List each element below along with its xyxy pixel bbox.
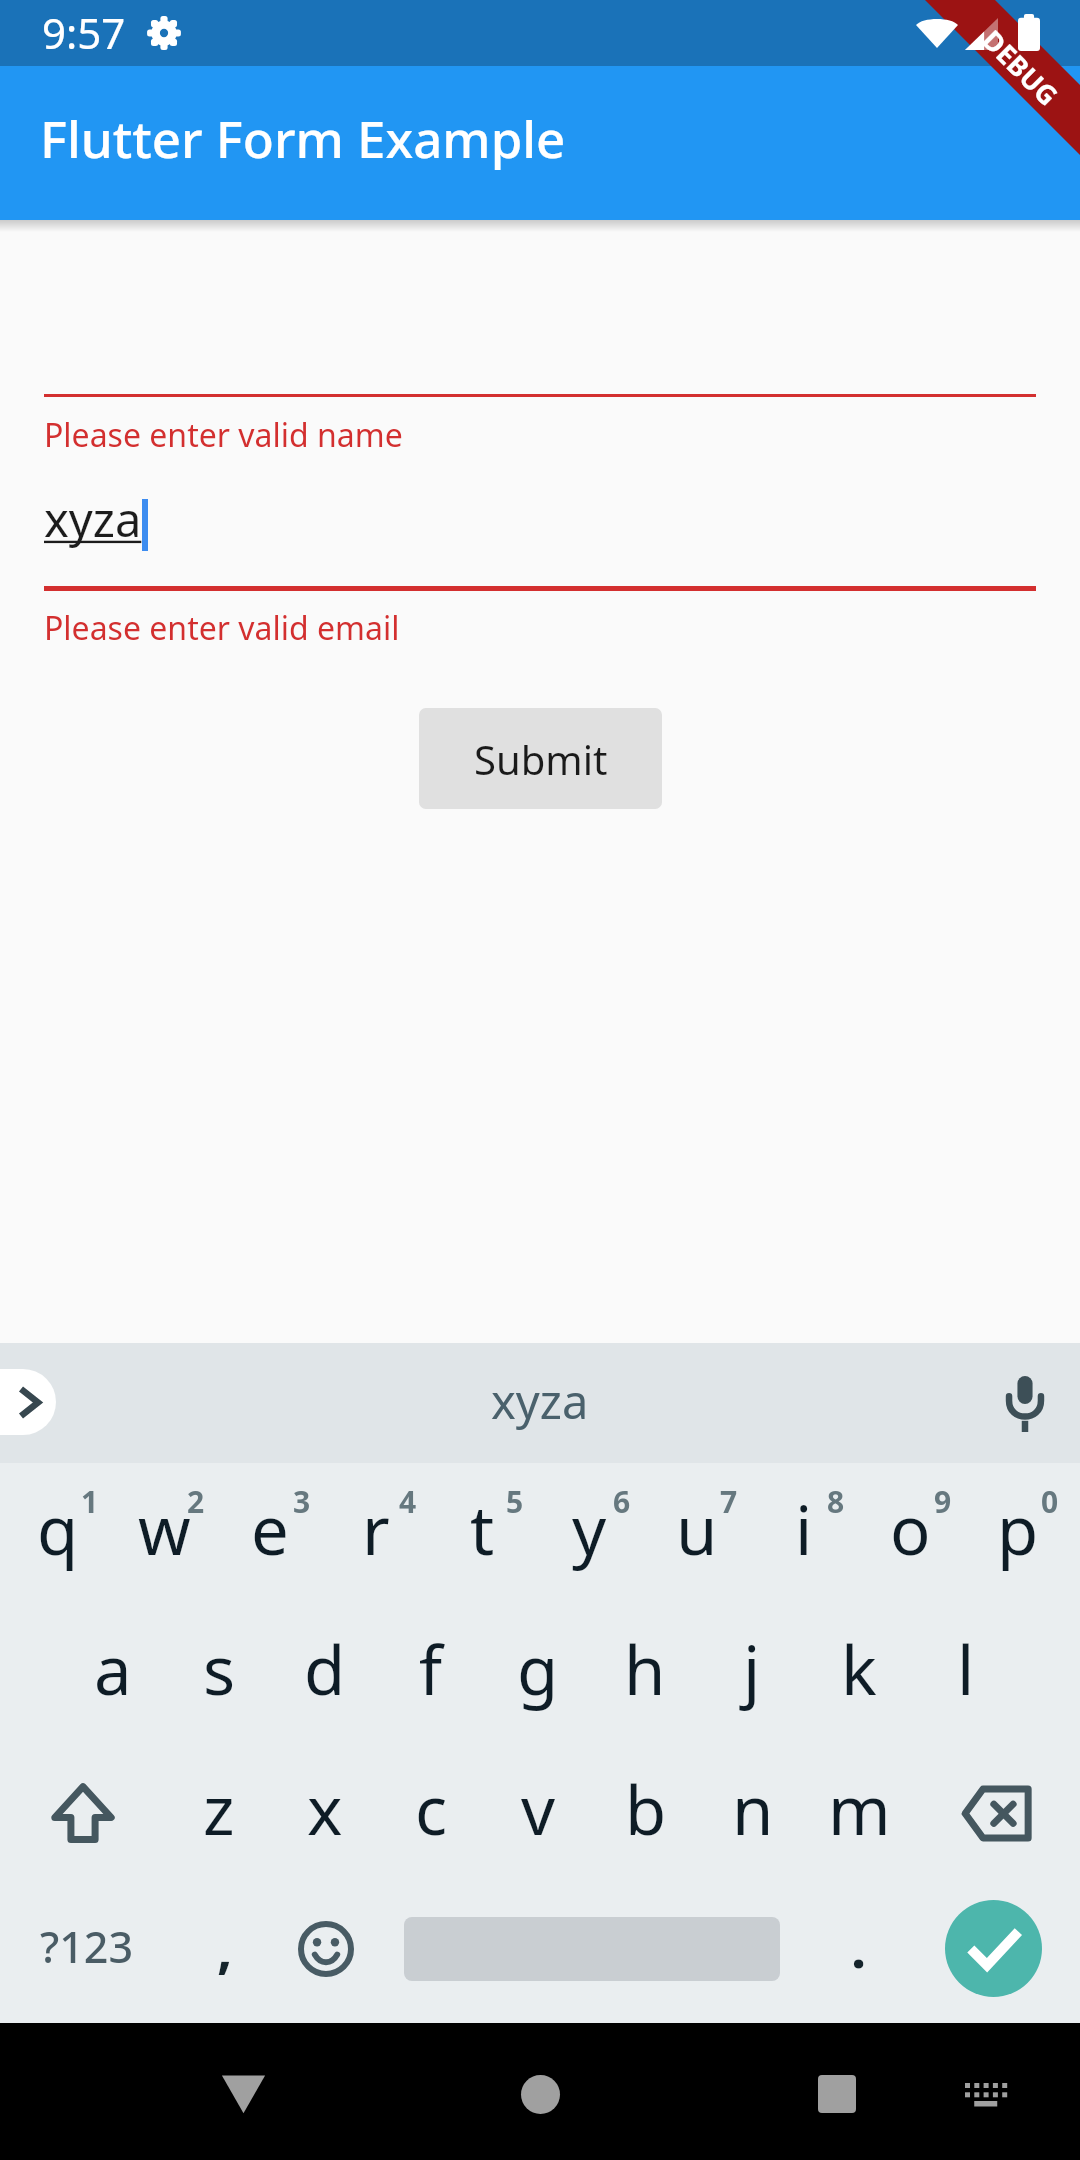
staticText: r xyxy=(362,1483,390,1574)
button[interactable]: v xyxy=(485,1743,592,1883)
button[interactable]: y xyxy=(536,1463,643,1603)
staticText: 1 xyxy=(81,1481,99,1522)
staticText: p xyxy=(997,1483,1039,1574)
button[interactable]: , xyxy=(170,1883,280,2023)
button[interactable]: s xyxy=(166,1603,272,1743)
staticText: h xyxy=(624,1623,666,1714)
button[interactable]: l xyxy=(912,1603,1019,1743)
staticText: a xyxy=(94,1623,132,1714)
button[interactable]: z xyxy=(166,1743,272,1883)
button[interactable]: Submit xyxy=(419,708,662,809)
button[interactable]: Enter xyxy=(906,1883,1080,2023)
button[interactable]: q xyxy=(5,1463,111,1603)
staticText: y xyxy=(572,1483,607,1574)
button[interactable]: d xyxy=(272,1603,378,1743)
staticText: j xyxy=(743,1623,761,1714)
button[interactable]: Emoji xyxy=(280,1883,372,2023)
staticText: 0 xyxy=(1041,1481,1059,1522)
staticText: xyza xyxy=(491,1369,589,1433)
staticText: w xyxy=(138,1483,191,1574)
staticText: d xyxy=(304,1623,346,1714)
button[interactable]: k xyxy=(805,1603,912,1743)
staticText: 7 xyxy=(720,1481,738,1522)
button[interactable]: t xyxy=(429,1463,536,1603)
button[interactable]: Home xyxy=(480,2034,600,2154)
button[interactable]: j xyxy=(698,1603,805,1743)
button[interactable]: . xyxy=(812,1883,906,2023)
button[interactable]: Recents xyxy=(777,2034,897,2154)
button[interactable]: Back xyxy=(183,2034,303,2154)
staticText: DEBUG xyxy=(974,21,1066,113)
staticText: i xyxy=(795,1483,813,1574)
staticText: 3 xyxy=(293,1481,311,1522)
staticText: x xyxy=(307,1763,343,1854)
button[interactable]: ?123 xyxy=(0,1883,170,2023)
staticText: 4 xyxy=(399,1481,417,1522)
staticText: q xyxy=(37,1483,79,1574)
staticText: k xyxy=(841,1623,877,1714)
staticText: b xyxy=(625,1763,667,1854)
staticText: 5 xyxy=(506,1481,524,1522)
button[interactable]: o xyxy=(857,1463,964,1603)
button[interactable]: x xyxy=(272,1743,378,1883)
staticText: ?123 xyxy=(40,1917,134,1976)
staticText: 9:57 xyxy=(42,4,126,61)
button[interactable]: n xyxy=(699,1743,806,1883)
button[interactable]: i xyxy=(750,1463,857,1603)
button[interactable]: f xyxy=(378,1603,484,1743)
button[interactable]: r xyxy=(323,1463,429,1603)
staticText: . xyxy=(851,1910,867,1984)
button[interactable]: Expand suggestions xyxy=(0,1369,56,1435)
staticText: 9 xyxy=(934,1481,952,1522)
staticText: c xyxy=(415,1763,448,1854)
staticText: o xyxy=(890,1483,931,1574)
button[interactable]: b xyxy=(592,1743,699,1883)
staticText: Submit xyxy=(474,732,608,786)
button[interactable]: Backspace xyxy=(913,1743,1080,1883)
staticText: 8 xyxy=(827,1481,845,1522)
staticText: e xyxy=(251,1483,289,1574)
staticText: , xyxy=(217,1910,233,1984)
staticText: Flutter Form Example xyxy=(40,103,566,172)
staticText: g xyxy=(517,1623,559,1714)
staticText: v xyxy=(521,1763,556,1854)
staticText: m xyxy=(828,1763,891,1854)
button[interactable]: Switch keyboard xyxy=(931,2037,1041,2147)
button[interactable]: m xyxy=(806,1743,913,1883)
button[interactable]: w xyxy=(111,1463,217,1603)
staticText: f xyxy=(419,1623,443,1714)
staticText: l xyxy=(957,1623,975,1714)
staticText: z xyxy=(203,1763,235,1854)
staticText: Please enter valid email xyxy=(44,606,400,650)
button[interactable]: a xyxy=(60,1603,166,1743)
button[interactable]: u xyxy=(643,1463,750,1603)
button[interactable]: g xyxy=(484,1603,591,1743)
staticText: xyza xyxy=(44,487,142,551)
staticText: t xyxy=(470,1483,495,1574)
staticText: Please enter valid name xyxy=(44,413,403,457)
staticText: s xyxy=(203,1623,236,1714)
button[interactable]: e xyxy=(217,1463,323,1603)
staticText: 6 xyxy=(613,1481,631,1522)
button[interactable]: p xyxy=(964,1463,1071,1603)
staticText: u xyxy=(676,1483,718,1574)
button[interactable]: Shift xyxy=(0,1743,166,1883)
button[interactable]: Space xyxy=(372,1883,812,2023)
staticText: 2 xyxy=(187,1481,205,1522)
button[interactable]: c xyxy=(378,1743,485,1883)
staticText: n xyxy=(732,1763,774,1854)
button[interactable]: h xyxy=(591,1603,698,1743)
